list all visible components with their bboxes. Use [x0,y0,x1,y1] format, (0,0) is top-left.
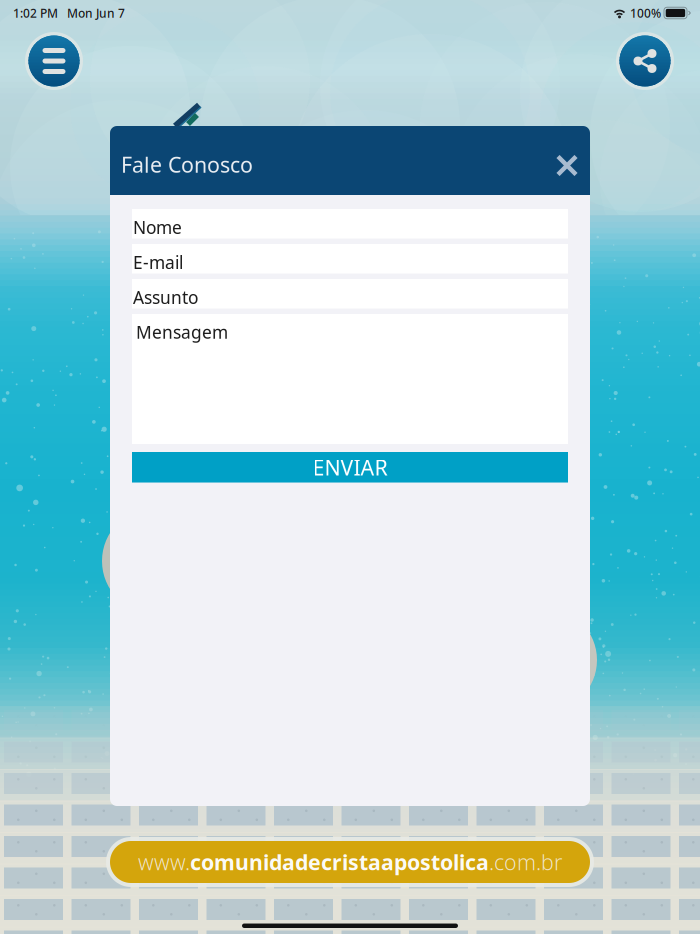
staticText: ENVIAR [312,453,387,481]
staticText: Nome [133,216,182,239]
button[interactable]: www. [106,837,594,887]
staticText: Mensagem [136,320,228,343]
button[interactable]: Share [616,32,674,90]
button[interactable]: ENVIAR [132,452,568,482]
staticText: 100% [627,5,661,21]
staticText: comunidadecristaapostolica [190,848,489,876]
staticText: Fale Conosco [121,150,253,179]
staticText: .com.br [489,848,562,876]
staticText: www. [138,848,190,876]
staticText: Assunto [133,286,198,309]
staticText: 1:02 PM Mon Jun 7 [13,5,125,21]
staticText: E-mail [133,251,183,274]
button[interactable]: Close [546,144,588,186]
button[interactable]: Menu [25,32,83,90]
